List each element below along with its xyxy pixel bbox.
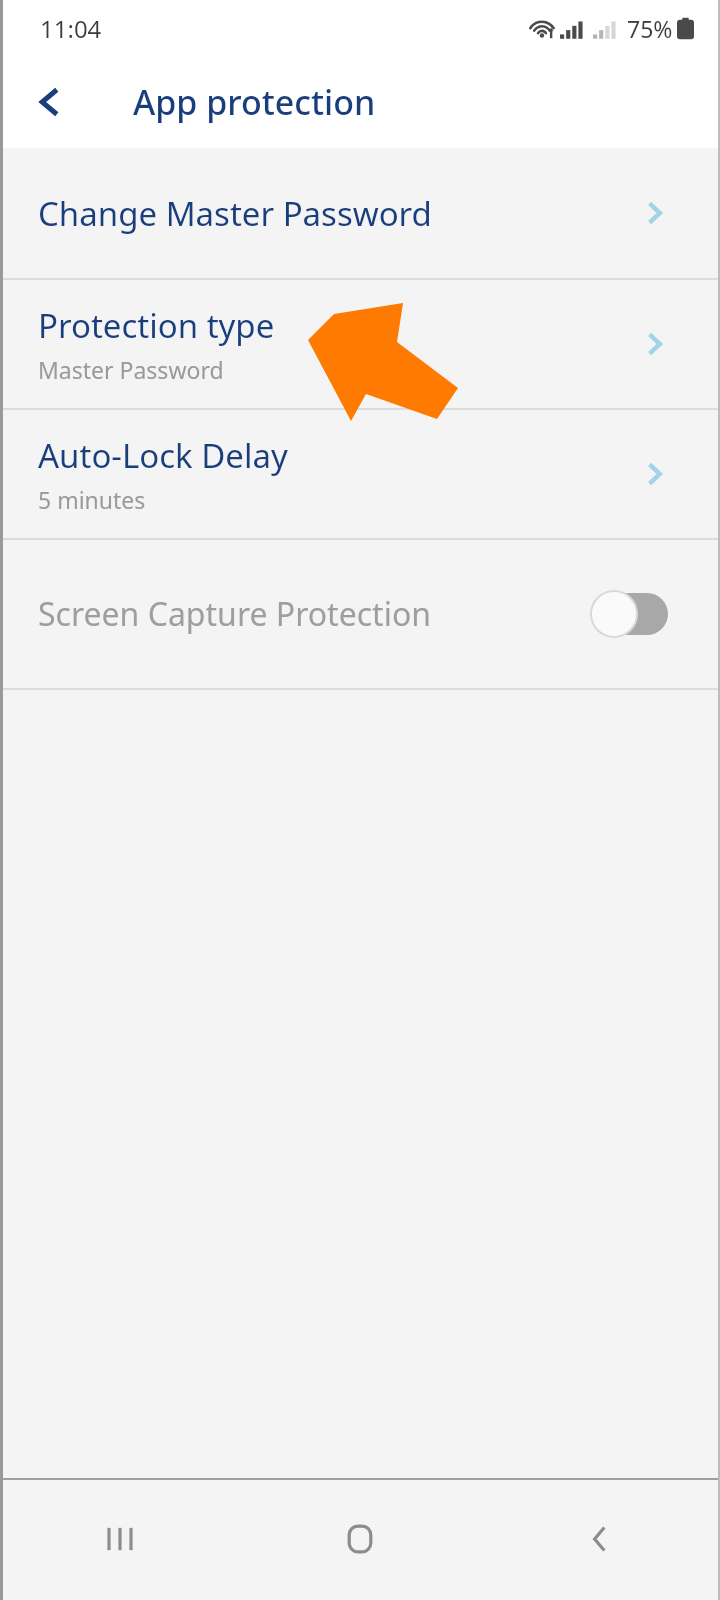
staticText: 5 minutes xyxy=(38,484,146,515)
button[interactable]: Home xyxy=(240,1478,480,1600)
button[interactable]: Screen Capture Protection xyxy=(0,540,720,688)
button[interactable]: Recent apps xyxy=(0,1478,240,1600)
staticText: Change Master Password xyxy=(38,191,432,236)
button[interactable]: Change Master Password xyxy=(0,148,720,278)
button[interactable]: Navigate up xyxy=(14,66,86,138)
button[interactable]: Back xyxy=(480,1478,720,1600)
staticText: Auto-Lock Delay xyxy=(38,433,288,478)
staticText: App protection xyxy=(133,79,376,125)
staticText: Screen Capture Protection xyxy=(38,592,432,636)
staticText: 75% xyxy=(627,13,673,44)
button[interactable]: Auto-Lock Delay xyxy=(0,410,720,538)
staticText: Protection type xyxy=(38,303,275,348)
button[interactable]: Protection type xyxy=(0,280,720,408)
staticText: Master Password xyxy=(38,354,224,385)
staticText: 11:04 xyxy=(40,12,102,45)
button[interactable]: Screen Capture Protection toggle xyxy=(590,590,668,638)
